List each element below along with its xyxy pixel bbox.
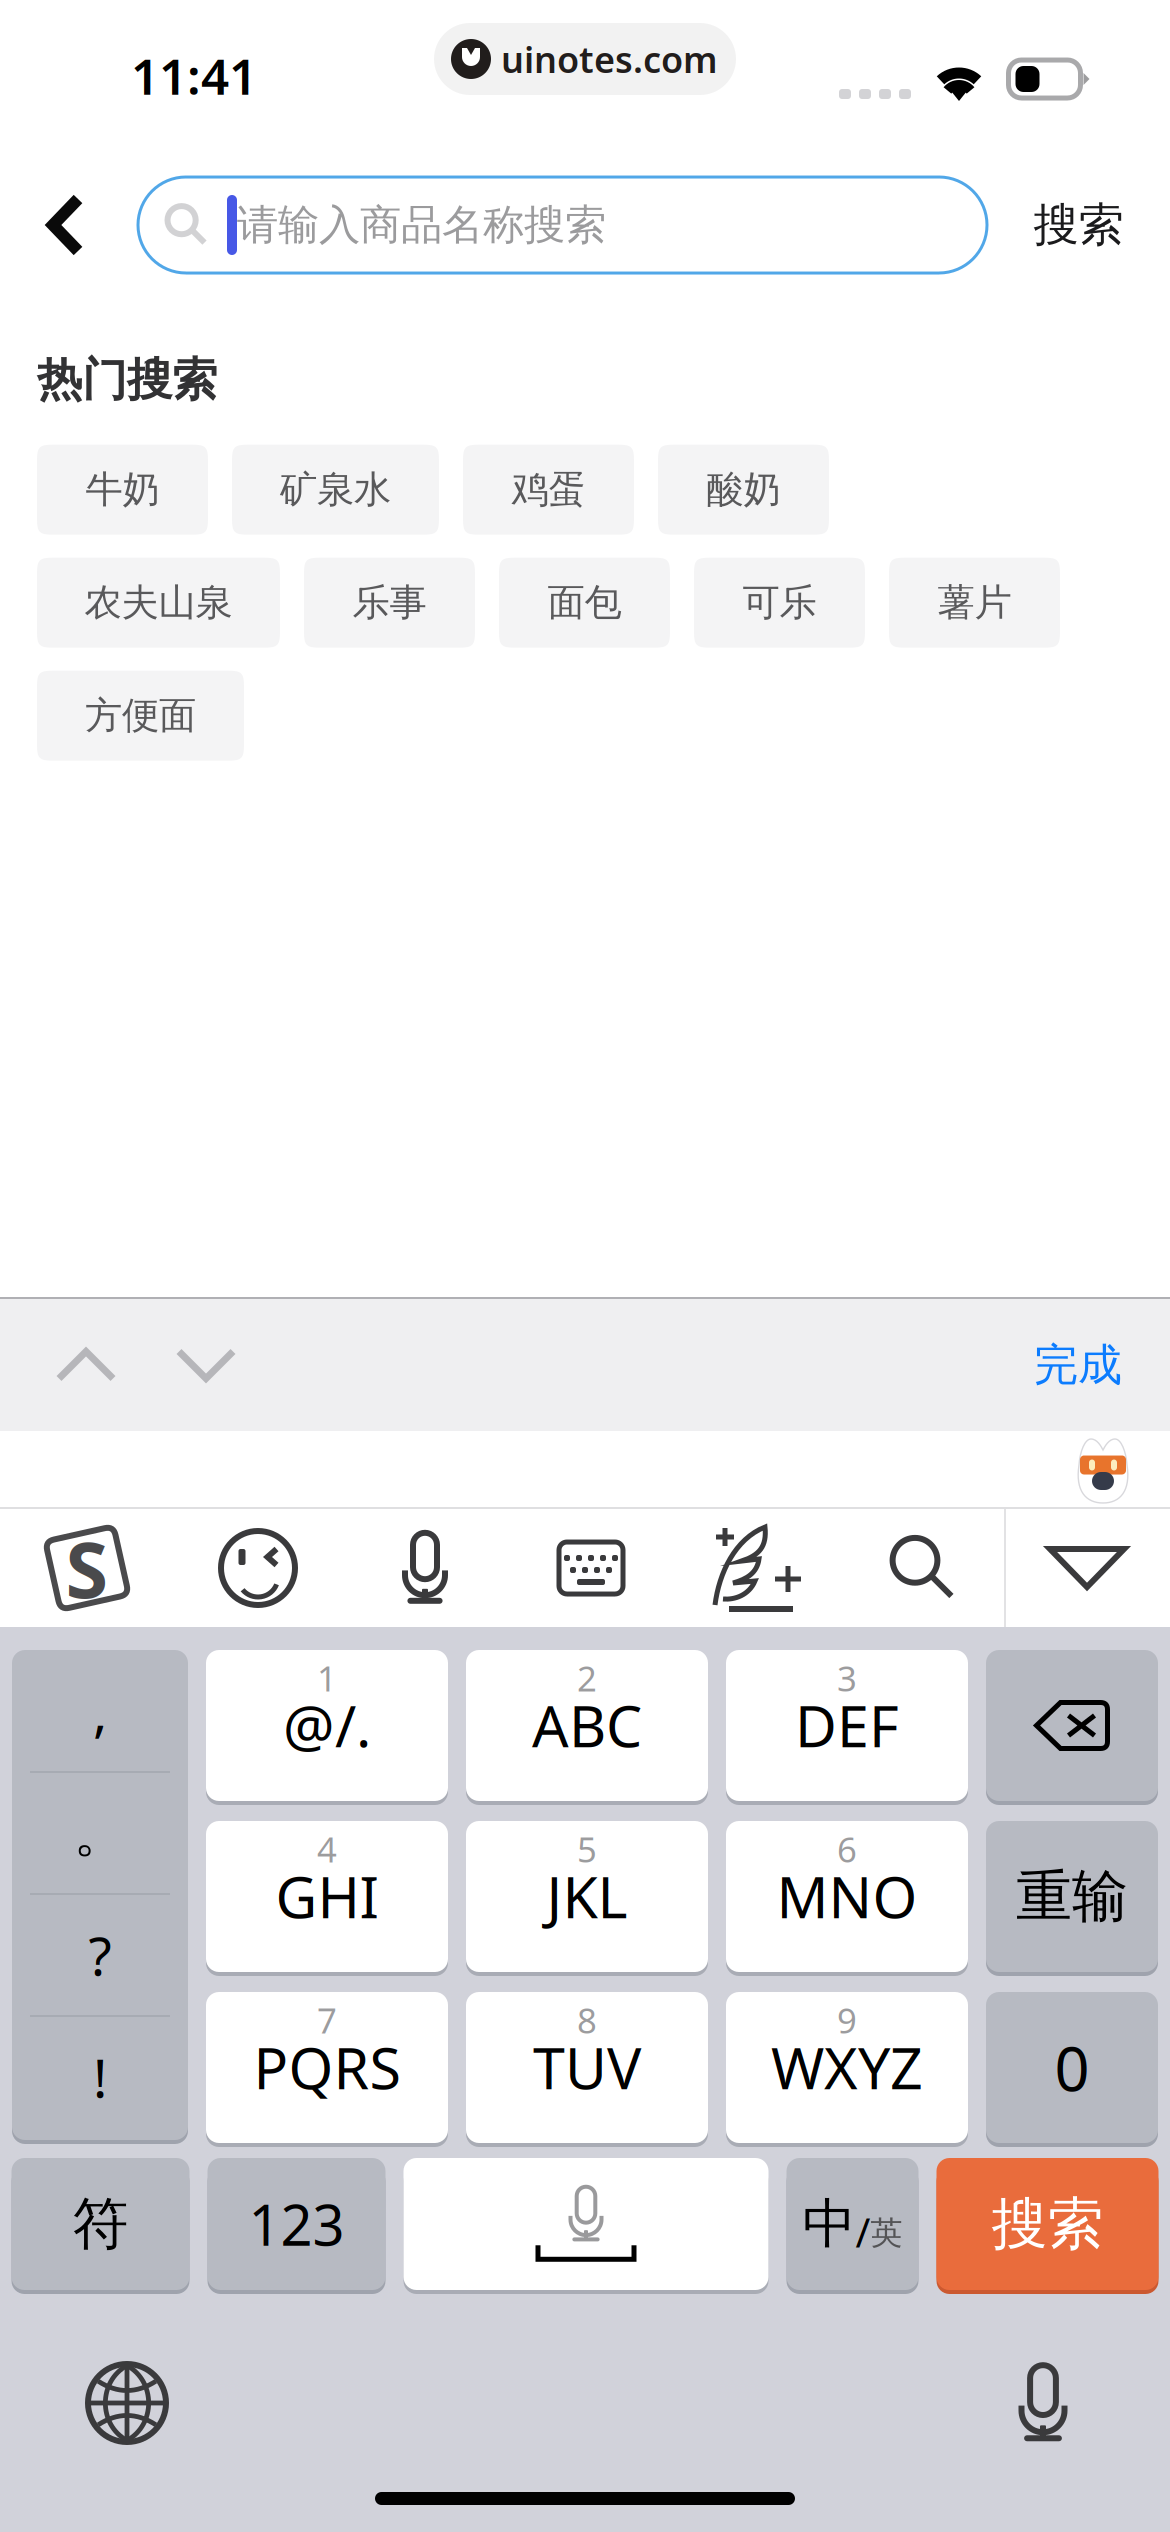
button[interactable]: 牛奶 bbox=[37, 445, 208, 535]
staticText: 完成 bbox=[1034, 1338, 1122, 1392]
staticText: 农夫山泉 bbox=[84, 580, 232, 626]
button[interactable]: 6 bbox=[726, 1821, 968, 1976]
staticText: ! bbox=[93, 2042, 107, 2112]
button[interactable]: 方便面 bbox=[37, 671, 244, 761]
staticText: 2 bbox=[577, 1655, 597, 1701]
staticText: DEF bbox=[795, 1687, 899, 1763]
button[interactable]: 7 bbox=[206, 1992, 448, 2147]
staticText: 方便面 bbox=[85, 693, 196, 739]
button[interactable]: 农夫山泉 bbox=[37, 558, 280, 648]
staticText: @/. bbox=[283, 1687, 371, 1763]
button[interactable]: 搜索 bbox=[987, 177, 1170, 273]
button[interactable]: Voice input bbox=[342, 1509, 508, 1627]
staticText: 可乐 bbox=[742, 580, 816, 626]
button[interactable]: Dictation bbox=[968, 2348, 1118, 2458]
button[interactable]: Delete bbox=[986, 1650, 1158, 1805]
button[interactable]: 酸奶 bbox=[658, 445, 829, 535]
staticText: ABC bbox=[532, 1687, 642, 1763]
staticText: 0 bbox=[1054, 2027, 1089, 2108]
button[interactable]: 矿泉水 bbox=[232, 445, 439, 535]
staticText: 5 bbox=[577, 1826, 597, 1872]
button[interactable]: 符 bbox=[11, 2158, 189, 2294]
staticText: , bbox=[93, 1676, 107, 1746]
button[interactable]: 3 bbox=[726, 1650, 968, 1805]
staticText: uinotes.com bbox=[501, 35, 718, 83]
staticText: 4 bbox=[317, 1826, 337, 1872]
button[interactable]: 完成 bbox=[998, 1299, 1170, 1431]
button[interactable]: 9 bbox=[726, 1992, 968, 2147]
button[interactable]: Back bbox=[0, 177, 138, 273]
button[interactable]: Hide keyboard bbox=[1004, 1509, 1170, 1627]
staticText: 符 bbox=[72, 2190, 128, 2258]
button[interactable]: ! bbox=[12, 2017, 188, 2139]
staticText: 中 bbox=[802, 2191, 855, 2257]
button[interactable]: Previous field bbox=[0, 1299, 146, 1431]
staticText: TUV bbox=[533, 2029, 641, 2105]
button[interactable]: ? bbox=[12, 1895, 188, 2017]
staticText: 7 bbox=[317, 1997, 337, 2043]
staticText: 薯片 bbox=[937, 580, 1011, 626]
button[interactable]: 重输 bbox=[986, 1821, 1158, 1976]
button[interactable]: 乐事 bbox=[304, 558, 475, 648]
staticText: 11:41 bbox=[131, 43, 257, 108]
button[interactable]: 2 bbox=[466, 1650, 708, 1805]
button[interactable]: Space bbox=[403, 2158, 768, 2294]
button[interactable]: Handwriting bbox=[674, 1509, 840, 1627]
staticText: 请输入商品名称搜索 bbox=[237, 200, 606, 250]
button[interactable]: Emoji bbox=[174, 1509, 342, 1627]
button[interactable]: Chinese English toggle bbox=[786, 2158, 918, 2294]
staticText: 牛奶 bbox=[85, 467, 159, 513]
staticText: 。 bbox=[73, 1800, 126, 1866]
staticText: MNO bbox=[776, 1858, 917, 1934]
staticText: 搜索 bbox=[991, 2190, 1103, 2258]
staticText: 酸奶 bbox=[706, 467, 780, 513]
button[interactable]: Search bbox=[840, 1509, 1004, 1627]
staticText: / bbox=[855, 2205, 870, 2258]
button[interactable]: Switch keyboard bbox=[52, 2348, 202, 2458]
staticText: WXYZ bbox=[771, 2029, 923, 2105]
staticText: ? bbox=[88, 1920, 111, 1990]
staticText: S bbox=[65, 1517, 108, 1619]
staticText: 3 bbox=[837, 1655, 857, 1701]
button[interactable]: 8 bbox=[466, 1992, 708, 2147]
staticText: 搜索 bbox=[1033, 197, 1123, 253]
button[interactable]: 。 bbox=[12, 1773, 188, 1895]
staticText: 6 bbox=[837, 1826, 857, 1872]
button[interactable]: 123 bbox=[207, 2158, 385, 2294]
button[interactable]: Sogou bbox=[0, 1509, 174, 1627]
staticText: 面包 bbox=[547, 580, 621, 626]
staticText: 123 bbox=[248, 2187, 344, 2261]
button[interactable]: 4 bbox=[206, 1821, 448, 1976]
staticText: 1 bbox=[317, 1655, 337, 1701]
staticText: JKL bbox=[546, 1858, 627, 1934]
staticText: 矿泉水 bbox=[280, 467, 391, 513]
button[interactable]: , bbox=[12, 1651, 188, 1773]
staticText: PQRS bbox=[253, 2029, 400, 2105]
staticText: 英 bbox=[870, 2213, 902, 2253]
button[interactable]: 搜索 bbox=[936, 2158, 1158, 2294]
button[interactable]: Next field bbox=[146, 1299, 266, 1431]
button[interactable]: 1 bbox=[206, 1650, 448, 1805]
button[interactable]: 请输入商品名称搜索 bbox=[138, 177, 987, 273]
staticText: 9 bbox=[837, 1997, 857, 2043]
staticText: 乐事 bbox=[352, 580, 426, 626]
button[interactable]: 面包 bbox=[499, 558, 670, 648]
button[interactable]: 5 bbox=[466, 1821, 708, 1976]
staticText: 热门搜索 bbox=[37, 352, 217, 408]
button[interactable]: 可乐 bbox=[694, 558, 865, 648]
staticText: 8 bbox=[577, 1997, 597, 2043]
button[interactable]: 薯片 bbox=[889, 558, 1060, 648]
staticText: 鸡蛋 bbox=[511, 467, 585, 513]
button[interactable]: 鸡蛋 bbox=[463, 445, 634, 535]
button[interactable]: 0 bbox=[986, 1992, 1158, 2147]
button[interactable]: Keyboard layout bbox=[508, 1509, 674, 1627]
staticText: 重输 bbox=[1016, 1862, 1128, 1931]
staticText: GHI bbox=[275, 1858, 378, 1934]
